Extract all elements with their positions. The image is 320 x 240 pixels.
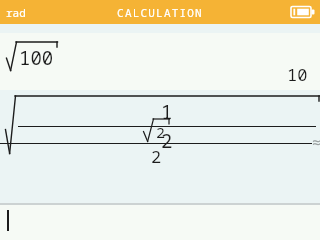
staticText: 2	[161, 128, 173, 154]
staticText: 1	[161, 99, 173, 125]
staticText: CALCULATION	[117, 5, 203, 20]
staticText: 2	[151, 145, 162, 168]
button[interactable]: 1	[0, 90, 320, 203]
staticText: 10	[287, 63, 308, 86]
button[interactable]: 100	[0, 33, 320, 90]
button[interactable]: rad	[6, 5, 26, 20]
staticText: 2	[156, 122, 166, 142]
button[interactable]	[0, 205, 320, 240]
button[interactable]: Battery	[291, 4, 315, 20]
staticText: 100	[19, 45, 54, 71]
